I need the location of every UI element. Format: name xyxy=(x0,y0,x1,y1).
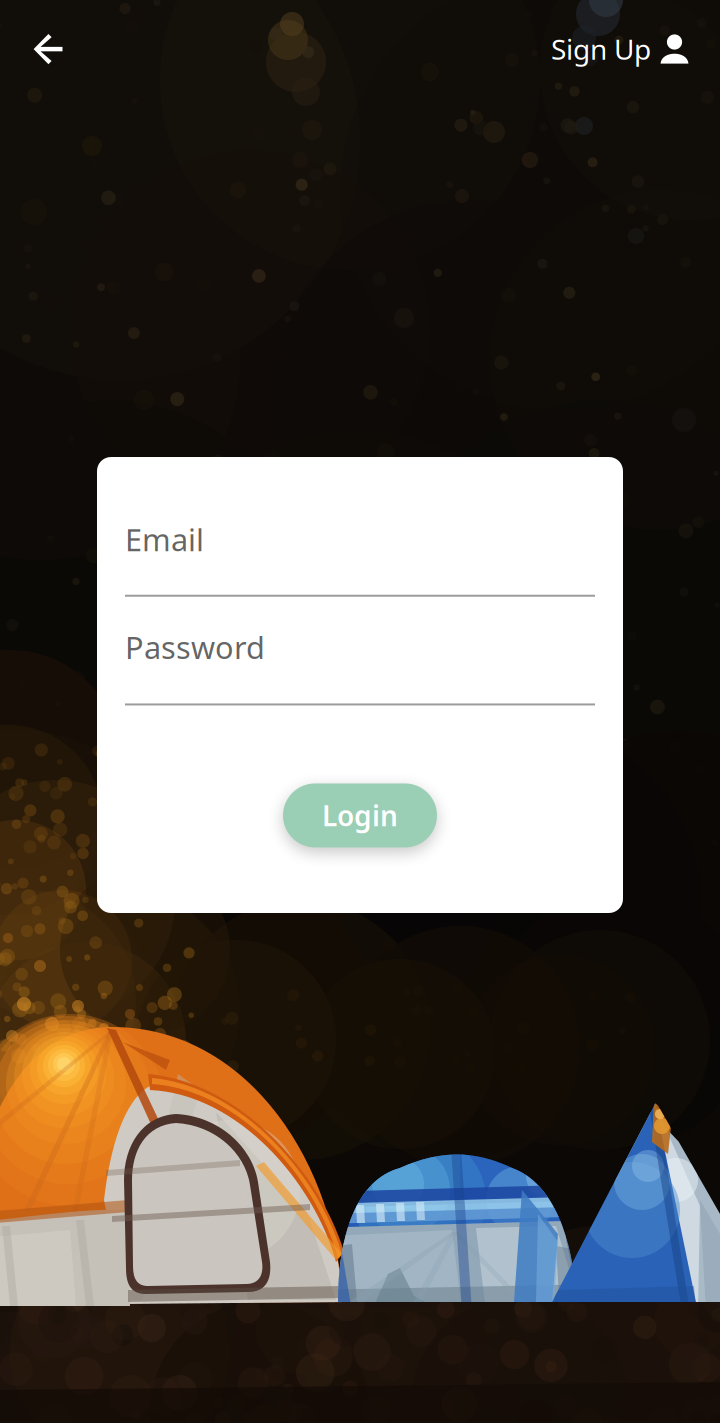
button[interactable]: Login xyxy=(283,783,437,847)
button[interactable]: Sign Up xyxy=(535,13,705,85)
button[interactable]: Back xyxy=(15,15,83,83)
staticText: Password xyxy=(125,627,265,667)
staticText: Login xyxy=(322,797,398,834)
staticText: Sign Up xyxy=(551,30,651,68)
staticText: Email xyxy=(125,519,204,560)
